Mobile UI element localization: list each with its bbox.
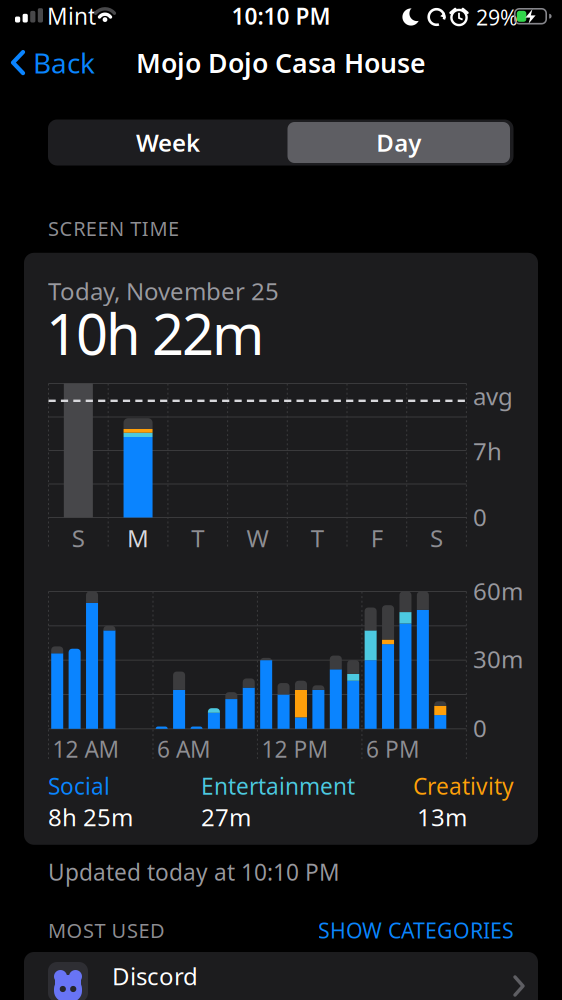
staticText: 12 PM xyxy=(261,734,328,764)
staticText: 10:10 PM xyxy=(231,1,330,31)
staticText: Discord xyxy=(112,960,198,992)
staticText: Entertainment xyxy=(201,771,355,801)
staticText: Back xyxy=(33,44,95,81)
staticText: 10h 22m xyxy=(46,296,264,370)
staticText: MOST USED xyxy=(48,917,165,944)
staticText: Social xyxy=(48,771,110,801)
staticText: 12 AM xyxy=(52,734,119,764)
staticText: S xyxy=(430,522,443,554)
staticText: 6 AM xyxy=(157,734,211,764)
button[interactable]: Discord xyxy=(24,952,538,1000)
staticText: SCREEN TIME xyxy=(48,215,179,242)
staticText: 30m xyxy=(473,643,523,675)
staticText: W xyxy=(246,522,268,554)
staticText: 8h 25m xyxy=(48,801,133,833)
staticText: 7h xyxy=(473,435,502,467)
button[interactable]: Week xyxy=(50,119,286,165)
staticText: 0 xyxy=(473,712,487,744)
staticText: Mojo Dojo Casa House xyxy=(136,45,426,80)
staticText: SHOW CATEGORIES xyxy=(318,916,514,944)
staticText: Creativity xyxy=(413,771,514,801)
staticText: M xyxy=(127,522,149,554)
staticText: Today, November 25 xyxy=(48,275,279,307)
staticText: 6 PM xyxy=(366,734,420,764)
staticText: F xyxy=(371,522,383,554)
staticText: Mint xyxy=(47,1,96,31)
staticText: T xyxy=(191,522,204,554)
staticText: 29% xyxy=(476,3,518,31)
button[interactable]: Day xyxy=(287,122,510,163)
staticText: Updated today at 10:10 PM xyxy=(48,857,340,887)
staticText: S xyxy=(72,522,85,554)
staticText: 13m xyxy=(417,801,467,833)
staticText: Week xyxy=(136,127,200,158)
staticText: Day xyxy=(376,127,421,158)
button[interactable]: SHOW CATEGORIES xyxy=(214,916,514,944)
staticText: T xyxy=(311,522,324,554)
staticText: 27m xyxy=(201,801,251,833)
button[interactable]: Back xyxy=(10,44,95,81)
staticText: 0 xyxy=(473,501,487,533)
staticText: avg xyxy=(473,380,513,412)
staticText: 60m xyxy=(473,575,523,607)
